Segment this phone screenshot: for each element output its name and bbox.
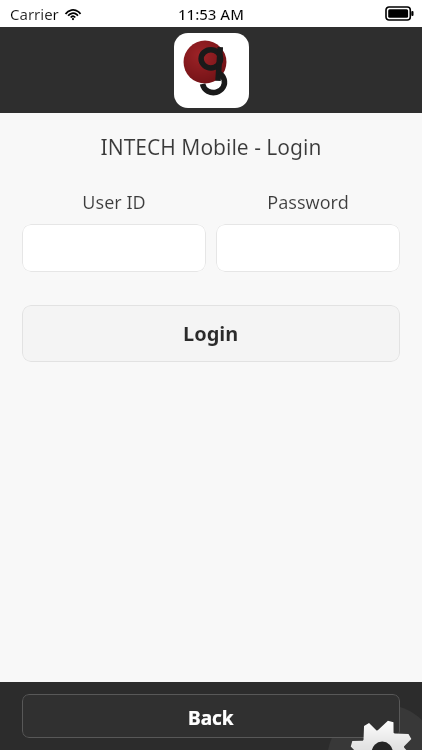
staticText: Login [183,320,239,347]
button[interactable]: User ID input [22,224,206,272]
staticText: 11:53 AM [178,4,244,24]
staticText: User ID [22,190,206,215]
button[interactable]: App logo [174,33,249,108]
button[interactable]: Password input [216,224,400,272]
staticText: Carrier [10,4,59,24]
staticText: Password [216,190,400,215]
button[interactable]: Back [22,694,400,738]
button[interactable]: Login [22,305,400,362]
button[interactable]: Settings [344,710,422,750]
staticText: Back [188,705,234,727]
staticText: INTECH Mobile - Login [0,133,422,162]
